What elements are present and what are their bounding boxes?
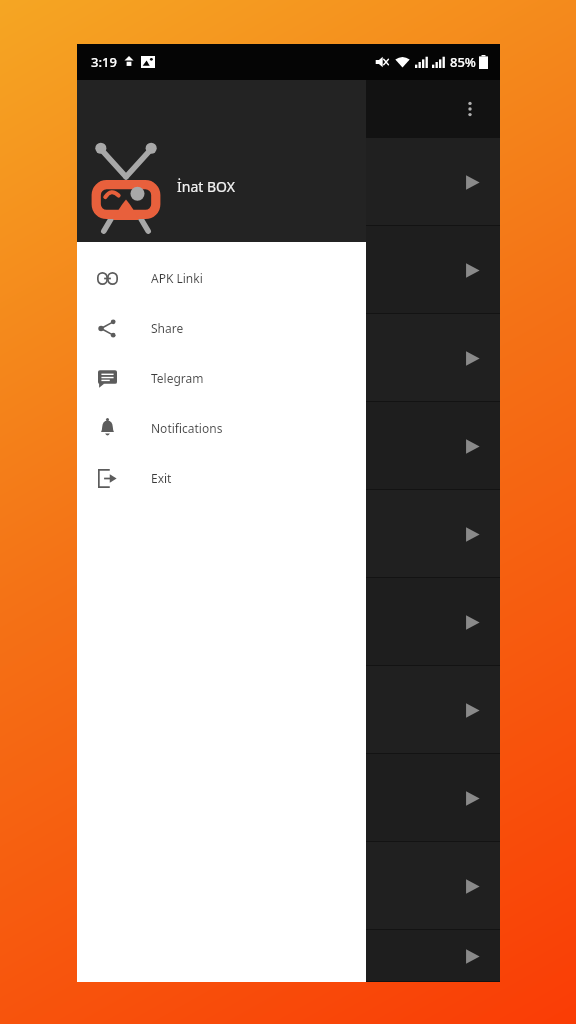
button[interactable]: [77, 226, 500, 314]
button[interactable]: [77, 666, 500, 754]
staticText: 85%: [450, 53, 476, 71]
button[interactable]: [77, 754, 500, 842]
staticText: Exit: [151, 470, 172, 486]
staticText: Notifications: [151, 420, 223, 436]
button[interactable]: [77, 842, 500, 930]
button[interactable]: APK Linki: [77, 253, 366, 303]
staticText: APK Linki: [151, 270, 203, 286]
staticText: Share: [151, 320, 184, 336]
button[interactable]: [77, 314, 500, 402]
button[interactable]: [77, 930, 500, 982]
button[interactable]: Exit: [77, 453, 366, 503]
button[interactable]: [77, 402, 500, 490]
button[interactable]: [77, 578, 500, 666]
staticText: İnat BOX: [177, 177, 235, 196]
staticText: Telegram: [151, 370, 204, 386]
button[interactable]: Share: [77, 303, 366, 353]
staticText: 3:19: [91, 53, 117, 71]
button[interactable]: Notifications: [77, 403, 366, 453]
button[interactable]: Telegram: [77, 353, 366, 403]
button[interactable]: More options: [448, 87, 492, 131]
button[interactable]: [77, 138, 500, 226]
button[interactable]: [77, 490, 500, 578]
